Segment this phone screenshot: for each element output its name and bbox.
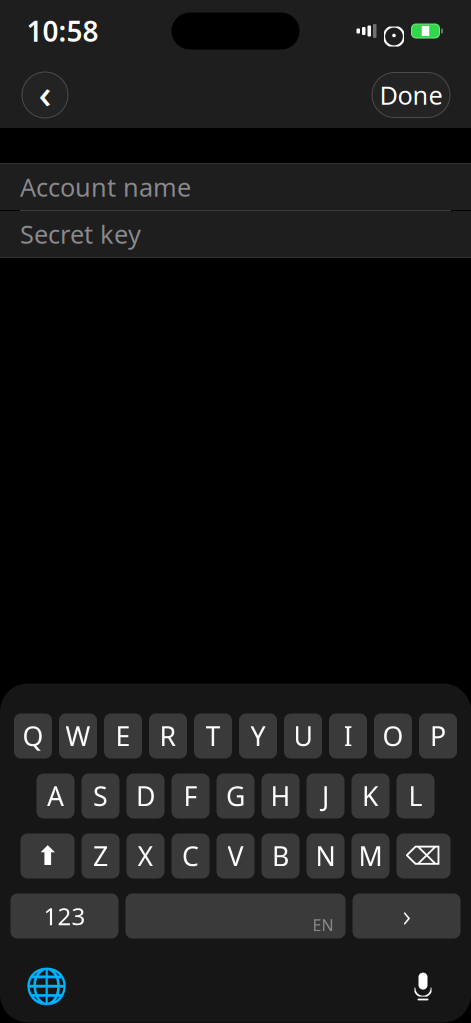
staticText: U [293, 718, 312, 754]
staticText: G [226, 778, 245, 814]
button[interactable]: Q [14, 713, 52, 758]
staticText: ⬆ [36, 841, 58, 871]
button[interactable]: U [284, 713, 322, 758]
staticText: J [322, 778, 329, 814]
button[interactable]: G [216, 773, 254, 818]
staticText: EN [312, 914, 333, 936]
staticText: M [358, 838, 382, 874]
staticText: Y [250, 718, 265, 754]
staticText: E [115, 718, 130, 754]
button[interactable]: Done [372, 72, 450, 117]
button[interactable]: Shift [20, 833, 74, 878]
button[interactable]: F [171, 773, 209, 818]
staticText: V [227, 838, 243, 874]
staticText: ⌫ [405, 842, 441, 870]
button[interactable]: O [374, 713, 412, 758]
button[interactable]: A [36, 773, 74, 818]
button[interactable]: Change keyboard [24, 964, 68, 1008]
button[interactable]: L [396, 773, 434, 818]
button[interactable]: W [59, 713, 97, 758]
button[interactable]: Dictate [401, 964, 445, 1008]
staticText: F [183, 778, 197, 814]
button[interactable]: V [216, 833, 254, 878]
button[interactable]: X [126, 833, 164, 878]
button[interactable]: N [306, 833, 344, 878]
button[interactable]: 123 [10, 893, 118, 938]
staticText: A [47, 778, 64, 814]
button[interactable]: S [81, 773, 119, 818]
button[interactable]: M [351, 833, 389, 878]
staticText: D [136, 778, 155, 814]
staticText: C [182, 838, 199, 874]
button[interactable]: Delete [396, 833, 450, 878]
staticText: S [93, 778, 108, 814]
button[interactable]: P [419, 713, 457, 758]
button[interactable]: C [171, 833, 209, 878]
staticText: R [159, 718, 176, 754]
button[interactable]: Secret key [0, 211, 471, 257]
staticText: ‹ [38, 66, 51, 119]
staticText: O [382, 718, 403, 754]
staticText: B [272, 838, 289, 874]
staticText: P [430, 718, 446, 754]
staticText: Account name [20, 170, 191, 204]
button[interactable]: K [351, 773, 389, 818]
button[interactable]: D [126, 773, 164, 818]
staticText: X [137, 838, 153, 874]
staticText: Z [93, 838, 108, 874]
button[interactable]: Back [22, 72, 68, 118]
staticText: I [343, 718, 352, 754]
button[interactable]: H [261, 773, 299, 818]
button[interactable]: Y [239, 713, 277, 758]
staticText: Done [379, 78, 442, 112]
button[interactable]: Z [81, 833, 119, 878]
staticText: K [362, 778, 379, 814]
button[interactable]: I [329, 713, 367, 758]
staticText: › [402, 893, 410, 936]
staticText: Q [22, 718, 43, 754]
staticText: 🌐 [24, 967, 67, 1006]
button[interactable]: Space [125, 893, 345, 938]
staticText: 10:58 [26, 12, 98, 50]
staticText: L [408, 778, 422, 814]
staticText: N [315, 838, 335, 874]
button[interactable]: T [194, 713, 232, 758]
button[interactable]: Account name [0, 164, 471, 210]
button[interactable]: Return [352, 893, 460, 938]
staticText: T [205, 718, 220, 754]
button[interactable]: E [104, 713, 142, 758]
button[interactable]: B [261, 833, 299, 878]
staticText: W [65, 718, 90, 754]
staticText: H [270, 778, 290, 814]
button[interactable]: R [149, 713, 187, 758]
button[interactable]: J [306, 773, 344, 818]
staticText: Secret key [20, 217, 141, 251]
staticText: 123 [43, 900, 85, 932]
